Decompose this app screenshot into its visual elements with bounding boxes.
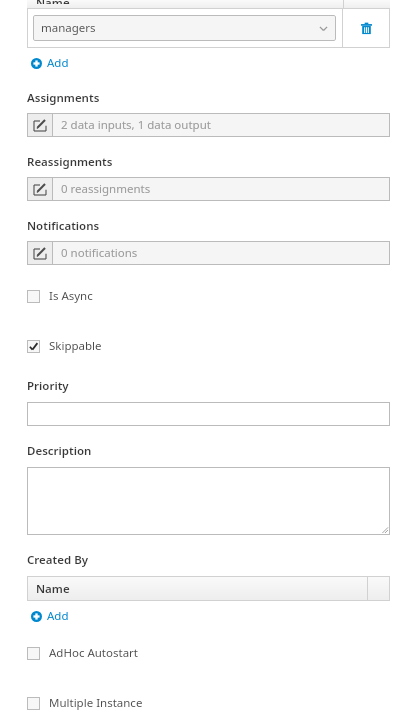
- staticText: 0 reassignments: [61, 181, 151, 197]
- staticText: Priority: [27, 378, 69, 394]
- button[interactable]: Delete: [343, 9, 389, 47]
- button[interactable]: Add: [29, 606, 71, 626]
- staticText: 2 data inputs, 1 data output: [61, 117, 211, 133]
- staticText: Multiple Instance: [49, 695, 143, 711]
- staticText: Description: [27, 443, 92, 459]
- staticText: Assignments: [27, 90, 100, 106]
- button[interactable]: [27, 467, 390, 535]
- staticText: managers: [41, 20, 319, 36]
- staticText: Notifications: [27, 218, 100, 234]
- button[interactable]: 0 notifications: [27, 241, 390, 265]
- button[interactable]: 0 reassignments: [27, 177, 390, 201]
- staticText: Name: [36, 0, 70, 4]
- button[interactable]: Skippable: [27, 336, 390, 356]
- staticText: AdHoc Autostart: [49, 645, 138, 661]
- staticText: Is Async: [49, 288, 93, 304]
- staticText: Created By: [27, 552, 89, 568]
- staticText: Add: [47, 608, 69, 624]
- staticText: 0 notifications: [61, 245, 138, 261]
- staticText: Reassignments: [27, 154, 113, 170]
- button[interactable]: Is Async: [27, 286, 390, 306]
- button[interactable]: Add: [29, 53, 71, 73]
- staticText: Add: [47, 55, 69, 71]
- button[interactable]: 2 data inputs, 1 data output: [27, 113, 390, 137]
- button[interactable]: [27, 402, 390, 426]
- staticText: Name: [36, 581, 70, 597]
- staticText: Skippable: [49, 338, 102, 354]
- button[interactable]: managers: [33, 15, 336, 41]
- button[interactable]: AdHoc Autostart: [27, 643, 390, 663]
- button[interactable]: Multiple Instance: [27, 693, 390, 713]
